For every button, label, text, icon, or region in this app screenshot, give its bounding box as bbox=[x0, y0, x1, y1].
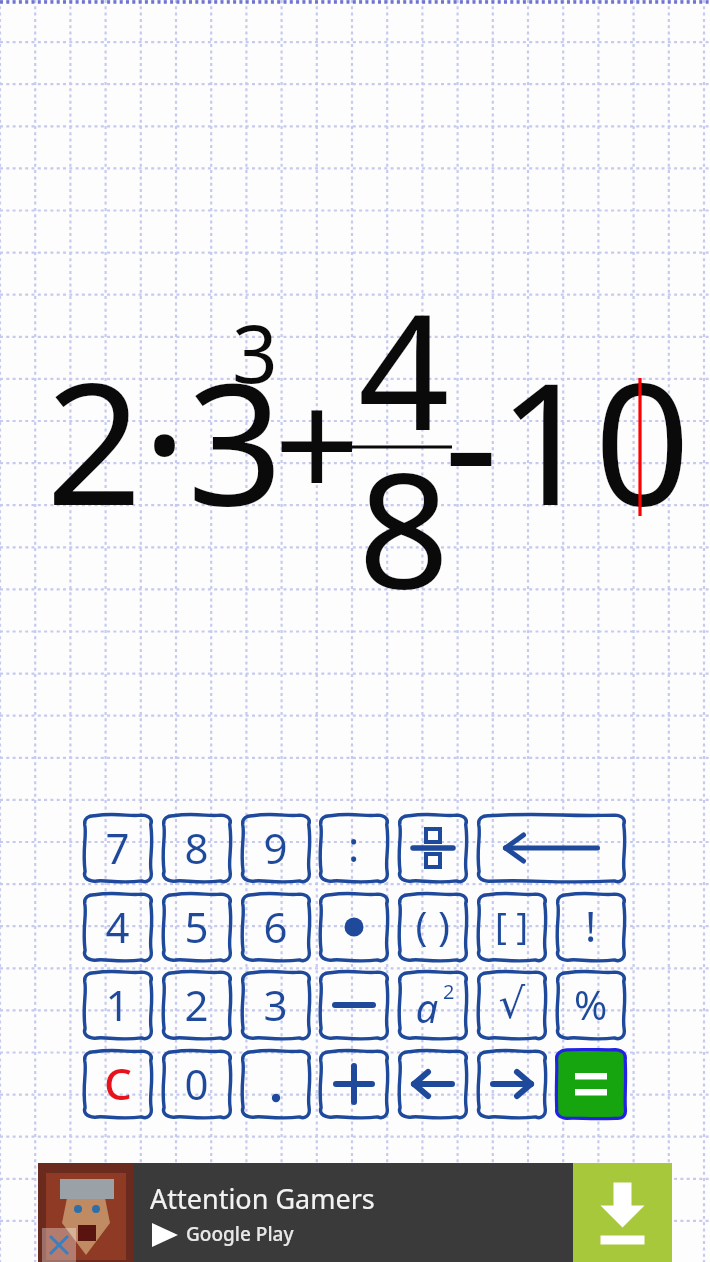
button[interactable]: 0 bbox=[161, 1048, 233, 1120]
button[interactable]: Colon bbox=[318, 812, 390, 884]
button[interactable]: Plus bbox=[318, 1048, 390, 1120]
button[interactable]: Brackets bbox=[476, 891, 548, 963]
button[interactable]: 4 bbox=[82, 891, 154, 963]
button[interactable]: Backspace bbox=[476, 812, 627, 884]
button[interactable]: Minus bbox=[318, 969, 390, 1041]
button[interactable]: 6 bbox=[240, 891, 312, 963]
button[interactable]: Parentheses bbox=[397, 891, 469, 963]
button[interactable] bbox=[38, 1163, 672, 1262]
button[interactable]: Square root bbox=[476, 969, 548, 1041]
button[interactable]: Move right bbox=[476, 1048, 548, 1120]
button[interactable]: Multiply bbox=[318, 891, 390, 963]
button[interactable]: Decimal point bbox=[240, 1048, 312, 1120]
button[interactable]: Equals bbox=[555, 1048, 627, 1120]
button[interactable]: 2 bbox=[161, 969, 233, 1041]
button[interactable]: 8 bbox=[161, 812, 233, 884]
button[interactable]: Factorial bbox=[555, 891, 627, 963]
button[interactable]: 1 bbox=[82, 969, 154, 1041]
button[interactable]: Move left bbox=[397, 1048, 469, 1120]
button[interactable]: 5 bbox=[161, 891, 233, 963]
button[interactable]: Divide bbox=[397, 812, 469, 884]
button[interactable]: Clear bbox=[82, 1048, 154, 1120]
button[interactable]: 3 bbox=[240, 969, 312, 1041]
button[interactable]: 9 bbox=[240, 812, 312, 884]
button[interactable]: Square bbox=[397, 969, 469, 1041]
button[interactable]: 7 bbox=[82, 812, 154, 884]
button[interactable]: Percent bbox=[555, 969, 627, 1041]
